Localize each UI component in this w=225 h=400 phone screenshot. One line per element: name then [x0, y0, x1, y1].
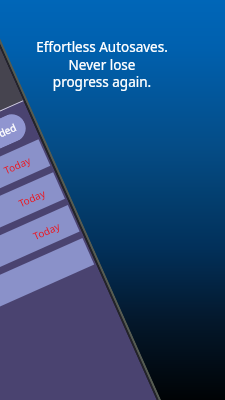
button[interactable]: Today: [0, 205, 80, 304]
button[interactable]: Today: [0, 172, 65, 271]
staticText: Today: [2, 153, 33, 177]
staticText: Recently added: [0, 120, 19, 162]
button[interactable]: Today: [0, 139, 50, 238]
staticText: Today: [31, 219, 62, 243]
button[interactable]: Recently added: [0, 110, 30, 173]
staticText: Effortless Autosaves. Never lose progres…: [36, 38, 168, 91]
staticText: Today: [16, 186, 47, 210]
button[interactable]: [0, 238, 94, 337]
